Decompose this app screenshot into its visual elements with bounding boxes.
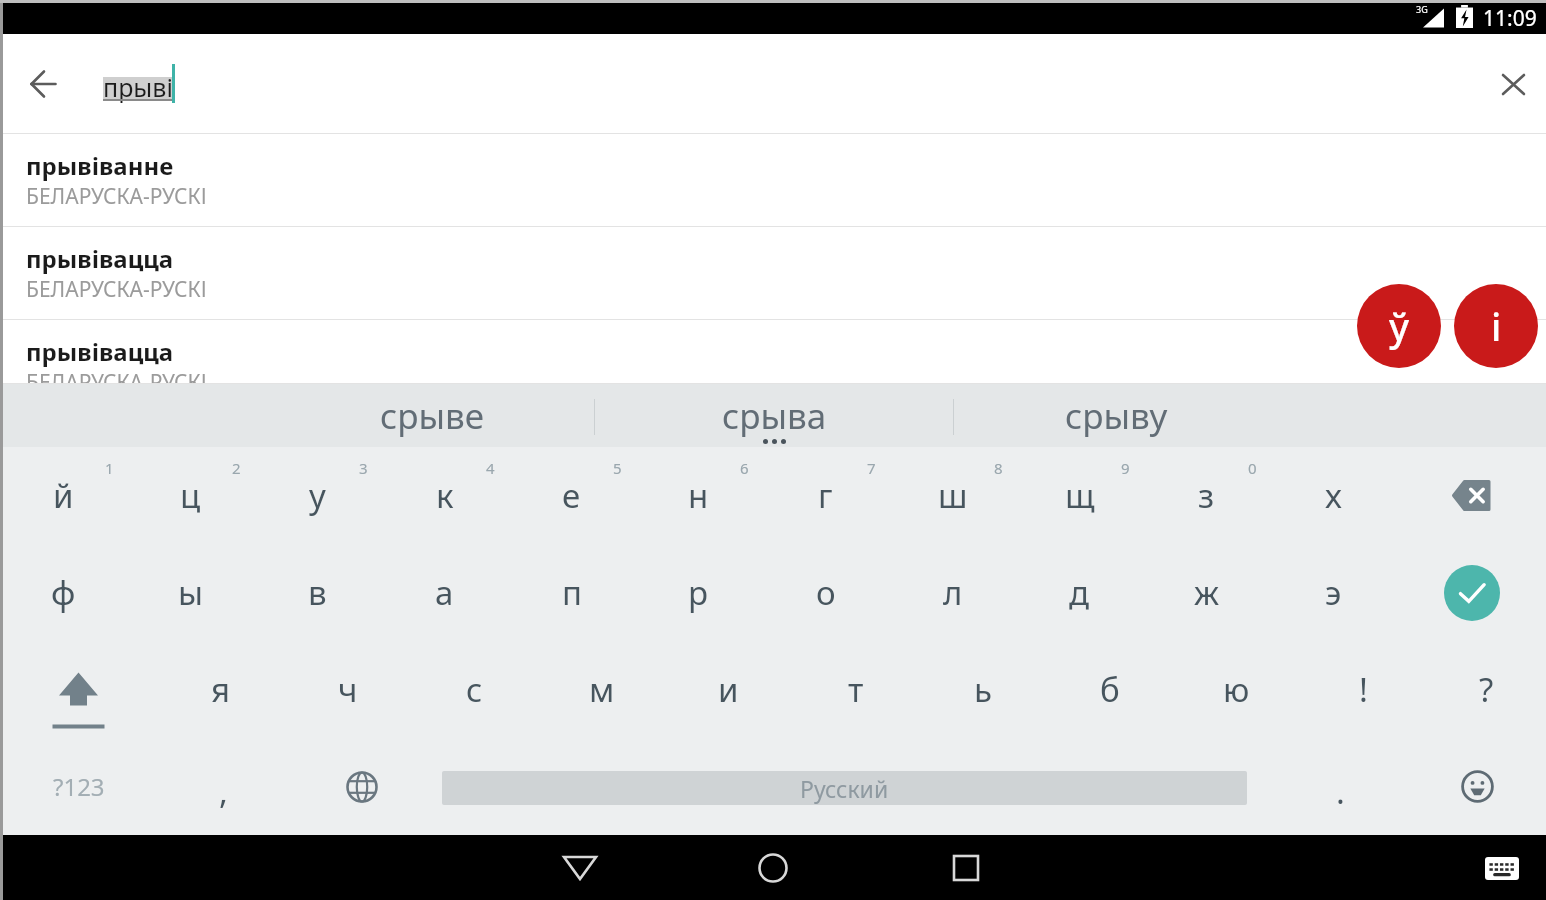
button[interactable]: к bbox=[381, 447, 508, 544]
staticText: я bbox=[211, 667, 231, 712]
button[interactable]: срыва bbox=[595, 384, 953, 447]
button[interactable]: н bbox=[635, 447, 762, 544]
staticText: прывівацца bbox=[26, 335, 174, 368]
button[interactable]: прывівацца bbox=[0, 227, 1546, 320]
button[interactable]: щ bbox=[1016, 447, 1143, 544]
staticText: д bbox=[1069, 570, 1090, 615]
staticText: ў bbox=[1389, 300, 1410, 352]
button[interactable]: з bbox=[1143, 447, 1270, 544]
button[interactable]: ! bbox=[1300, 641, 1427, 738]
button[interactable]: п bbox=[508, 544, 635, 641]
staticText: е bbox=[562, 473, 581, 518]
staticText: 2 bbox=[232, 458, 241, 478]
staticText: щ bbox=[1065, 473, 1095, 518]
button[interactable]: Back bbox=[19, 60, 67, 108]
staticText: п bbox=[562, 570, 582, 615]
staticText: с bbox=[466, 667, 483, 712]
button[interactable]: Backspace bbox=[1397, 447, 1546, 544]
button[interactable]: ч bbox=[284, 641, 411, 738]
button[interactable]: я bbox=[157, 641, 284, 738]
button[interactable]: Home bbox=[745, 840, 801, 896]
button[interactable]: , bbox=[157, 738, 290, 835]
staticText: прывіванне bbox=[26, 149, 174, 182]
button[interactable]: Switch language bbox=[290, 738, 434, 835]
button[interactable]: ж bbox=[1143, 544, 1270, 641]
button[interactable]: . bbox=[1255, 738, 1425, 835]
button[interactable]: Hide keyboard bbox=[1478, 844, 1526, 892]
staticText: 7 bbox=[867, 458, 876, 478]
staticText: у bbox=[309, 473, 326, 518]
button[interactable]: ?123 bbox=[0, 738, 157, 835]
button[interactable]: о bbox=[762, 544, 889, 641]
button[interactable]: і bbox=[1454, 284, 1538, 368]
button[interactable]: б bbox=[1046, 641, 1173, 738]
button[interactable]: ц bbox=[127, 447, 254, 544]
staticText: 9 bbox=[1121, 458, 1130, 478]
staticText: 3G bbox=[1416, 3, 1428, 15]
staticText: прыві bbox=[103, 70, 173, 104]
button[interactable]: Shift bbox=[0, 641, 157, 738]
staticText: г bbox=[818, 473, 833, 518]
staticText: к bbox=[436, 473, 454, 518]
button[interactable]: Русский bbox=[442, 771, 1247, 805]
staticText: БЕЛАРУСКА-РУСКІ bbox=[26, 275, 207, 304]
button[interactable]: Recent apps bbox=[938, 840, 994, 896]
button[interactable]: ш bbox=[889, 447, 1016, 544]
staticText: ?123 bbox=[53, 770, 105, 803]
button[interactable]: р bbox=[635, 544, 762, 641]
staticText: м bbox=[589, 667, 615, 712]
button[interactable]: Emoji bbox=[1425, 738, 1546, 835]
staticText: а bbox=[435, 570, 454, 615]
button[interactable]: т bbox=[792, 641, 919, 738]
staticText: й bbox=[53, 473, 74, 518]
staticText: 11:09 bbox=[1483, 4, 1537, 33]
button[interactable]: ф bbox=[0, 544, 127, 641]
button[interactable]: с bbox=[411, 641, 538, 738]
button[interactable]: а bbox=[381, 544, 508, 641]
staticText: срыве bbox=[380, 392, 485, 440]
button[interactable]: й bbox=[0, 447, 127, 544]
button[interactable]: е bbox=[508, 447, 635, 544]
staticText: в bbox=[308, 570, 327, 615]
button[interactable]: прывіванне bbox=[0, 134, 1546, 227]
staticText: БЕЛАРУСКА-РУСКІ bbox=[26, 368, 207, 384]
button[interactable]: ь bbox=[919, 641, 1046, 738]
staticText: т bbox=[848, 667, 864, 712]
staticText: 5 bbox=[613, 458, 622, 478]
button[interactable]: Enter bbox=[1397, 544, 1546, 641]
button[interactable]: ю bbox=[1173, 641, 1300, 738]
button[interactable]: д bbox=[1016, 544, 1143, 641]
staticText: БЕЛАРУСКА-РУСКІ bbox=[26, 182, 207, 211]
button[interactable]: срыве bbox=[270, 384, 594, 447]
button[interactable]: ы bbox=[127, 544, 254, 641]
staticText: ь bbox=[974, 667, 992, 712]
button[interactable]: срыву bbox=[954, 384, 1278, 447]
staticText: э bbox=[1325, 570, 1342, 615]
staticText: 3 bbox=[359, 458, 368, 478]
button[interactable]: х bbox=[1270, 447, 1397, 544]
button[interactable]: э bbox=[1270, 544, 1397, 641]
button[interactable]: л bbox=[889, 544, 1016, 641]
staticText: . bbox=[1336, 769, 1345, 814]
staticText: 1 bbox=[105, 458, 114, 478]
staticText: ю bbox=[1223, 667, 1250, 712]
button[interactable]: у bbox=[254, 447, 381, 544]
button[interactable]: ў bbox=[1357, 284, 1441, 368]
staticText: і bbox=[1491, 300, 1502, 352]
staticText: б bbox=[1100, 667, 1120, 712]
staticText: х bbox=[1325, 473, 1342, 518]
staticText: срыву bbox=[1065, 392, 1168, 440]
staticText: ч bbox=[338, 667, 358, 712]
button[interactable]: Clear search bbox=[1489, 60, 1537, 108]
staticText: 8 bbox=[994, 458, 1003, 478]
staticText: ? bbox=[1479, 667, 1494, 712]
button[interactable]: г bbox=[762, 447, 889, 544]
button[interactable]: Back bbox=[552, 840, 608, 896]
button[interactable]: м bbox=[538, 641, 665, 738]
staticText: 6 bbox=[740, 458, 749, 478]
button[interactable]: прывівацца bbox=[0, 320, 1546, 384]
button[interactable]: в bbox=[254, 544, 381, 641]
button[interactable]: ? bbox=[1427, 641, 1546, 738]
button[interactable]: и bbox=[665, 641, 792, 738]
staticText: и bbox=[718, 667, 739, 712]
